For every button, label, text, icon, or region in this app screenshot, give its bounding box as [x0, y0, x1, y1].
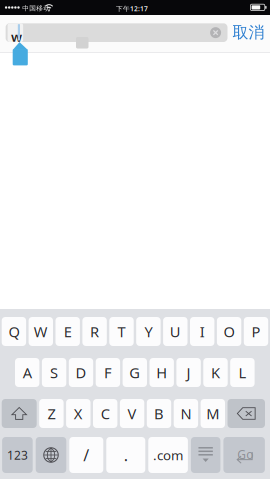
staticText: P	[251, 322, 260, 341]
staticText: D	[75, 363, 86, 382]
staticText: B	[154, 404, 164, 423]
button[interactable]: I	[190, 317, 214, 346]
button[interactable]: U	[163, 317, 187, 346]
staticText: C	[101, 404, 110, 423]
button[interactable]: R	[82, 317, 107, 346]
staticText: W	[34, 322, 48, 341]
staticText: V	[128, 404, 137, 423]
staticText: K	[211, 363, 220, 382]
button[interactable]: H	[149, 358, 174, 387]
staticText: N	[180, 404, 191, 423]
button[interactable]: /	[69, 437, 103, 473]
button[interactable]: N	[174, 399, 198, 428]
staticText: Z	[47, 404, 55, 423]
button[interactable]: S	[42, 358, 66, 387]
staticText: H	[156, 363, 167, 382]
button[interactable]: M	[201, 399, 225, 428]
button[interactable]: L	[230, 358, 255, 387]
button[interactable]: G	[123, 358, 147, 387]
button[interactable]: Y	[136, 317, 161, 346]
button[interactable]: D	[69, 358, 93, 387]
staticText: 下午12:17	[116, 4, 148, 13]
staticText: 取消	[232, 23, 264, 42]
staticText: R	[90, 322, 99, 341]
staticText: w	[11, 28, 22, 45]
staticText: 123	[7, 447, 28, 463]
staticText: U	[170, 322, 181, 341]
staticText: /	[83, 444, 89, 466]
staticText: S	[50, 363, 58, 382]
button[interactable]: Go	[223, 437, 265, 473]
button[interactable]: A	[15, 358, 39, 387]
button[interactable]: P	[244, 317, 268, 346]
staticText: E	[64, 322, 72, 341]
button[interactable]: T	[109, 317, 134, 346]
button[interactable]: Clear text	[206, 23, 226, 42]
staticText: I	[200, 322, 205, 341]
staticText: .com	[153, 446, 183, 464]
button[interactable]: V	[120, 399, 144, 428]
staticText: X	[74, 404, 83, 423]
staticText: G	[129, 363, 140, 382]
button[interactable]: 123	[2, 437, 33, 473]
button[interactable]: E	[55, 317, 80, 346]
staticText: O	[224, 322, 235, 341]
button[interactable]: X	[66, 399, 90, 428]
button[interactable]: J	[176, 358, 201, 387]
staticText: F	[104, 363, 112, 382]
staticText: Y	[144, 322, 152, 341]
staticText: T	[117, 322, 125, 341]
staticText: L	[238, 363, 246, 382]
staticText: A	[23, 363, 32, 382]
button[interactable]: W	[29, 317, 53, 346]
staticText: 中国移动	[22, 4, 50, 12]
button[interactable]: Hide keyboard	[191, 437, 220, 473]
button[interactable]: Delete	[227, 399, 265, 428]
staticText: .	[124, 444, 128, 466]
button[interactable]: .	[106, 437, 145, 473]
staticText: Q	[8, 322, 19, 341]
button[interactable]: .com	[148, 437, 188, 473]
button[interactable]: Q	[2, 317, 26, 346]
button[interactable]: K	[203, 358, 228, 387]
button[interactable]: B	[147, 399, 171, 428]
button[interactable]: C	[93, 399, 117, 428]
button[interactable]: Z	[39, 399, 64, 428]
button[interactable]: 取消	[229, 21, 267, 43]
button[interactable]: O	[217, 317, 241, 346]
button[interactable]: Shift	[2, 399, 37, 428]
button[interactable]: F	[96, 358, 120, 387]
staticText: J	[187, 363, 191, 382]
staticText: Go	[237, 446, 253, 462]
button[interactable]: Next keyboard	[36, 437, 66, 473]
staticText: M	[206, 404, 219, 423]
